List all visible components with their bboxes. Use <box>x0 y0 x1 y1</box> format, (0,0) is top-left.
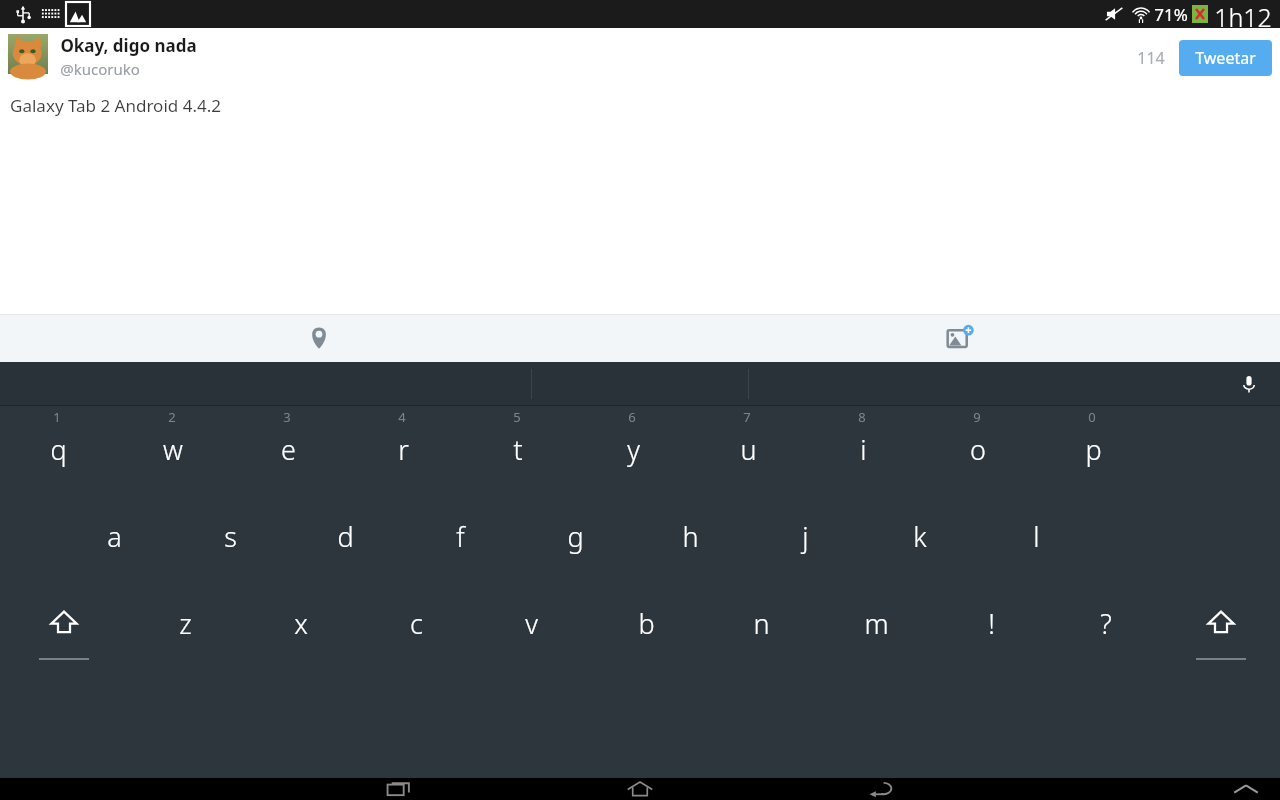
staticText: 4 <box>398 408 406 426</box>
button[interactable]: l <box>984 506 1088 566</box>
button[interactable]: Expand <box>1218 778 1274 800</box>
staticText: s <box>224 518 237 555</box>
button[interactable]: e <box>236 419 340 479</box>
staticText: @kucoruko <box>60 59 140 79</box>
button[interactable]: a <box>62 506 166 566</box>
staticText: ! <box>988 605 995 642</box>
button[interactable]: Shift <box>12 593 116 653</box>
staticText: Okay, digo nada <box>60 34 197 57</box>
staticText: i <box>860 431 867 468</box>
button[interactable]: x <box>249 593 353 653</box>
staticText: l <box>1033 518 1040 555</box>
staticText: e <box>281 431 296 468</box>
staticText: 7 <box>743 408 751 426</box>
staticText: n <box>753 605 770 642</box>
button[interactable]: w <box>121 419 225 479</box>
button[interactable]: g <box>523 506 627 566</box>
button[interactable]: p <box>1041 419 1145 479</box>
staticText: 114 <box>1137 47 1165 69</box>
staticText: q <box>50 431 67 468</box>
staticText: Galaxy Tab 2 Android 4.4.2 <box>10 94 221 117</box>
staticText: 3 <box>283 408 291 426</box>
staticText: t <box>513 431 523 468</box>
staticText: 9 <box>973 408 981 426</box>
staticText: o <box>970 431 986 468</box>
staticText: 2 <box>168 408 176 426</box>
button[interactable]: h <box>638 506 742 566</box>
staticText: k <box>913 518 927 555</box>
staticText: v <box>525 605 538 642</box>
button[interactable]: j <box>753 506 857 566</box>
staticText: 1h12 <box>1214 0 1272 28</box>
button[interactable]: s <box>178 506 282 566</box>
staticText: 0 <box>1088 408 1096 426</box>
staticText: ? <box>1100 605 1112 642</box>
staticText: 6 <box>628 408 636 426</box>
staticText: h <box>682 518 699 555</box>
staticText: 8 <box>858 408 866 426</box>
button[interactable]: q <box>6 419 110 479</box>
button[interactable]: ? <box>1054 593 1158 653</box>
staticText: b <box>638 605 655 642</box>
staticText: u <box>740 431 757 468</box>
button[interactable]: Shift <box>1169 593 1273 653</box>
button[interactable]: f <box>408 506 512 566</box>
staticText: d <box>337 518 354 555</box>
staticText: r <box>398 431 409 468</box>
button[interactable]: Recent apps <box>368 778 430 800</box>
staticText: y <box>627 431 640 468</box>
staticText: a <box>107 518 122 555</box>
staticText: j <box>802 518 809 555</box>
button[interactable]: m <box>824 593 928 653</box>
button[interactable]: t <box>466 419 570 479</box>
button[interactable]: k <box>868 506 972 566</box>
staticText: 5 <box>513 408 521 426</box>
button[interactable]: Add photo <box>936 314 984 362</box>
button[interactable]: y <box>581 419 685 479</box>
staticText: c <box>410 605 423 642</box>
button[interactable]: ! <box>939 593 1043 653</box>
button[interactable]: d <box>293 506 397 566</box>
staticText: f <box>456 518 465 555</box>
button[interactable]: v <box>479 593 583 653</box>
staticText: g <box>567 518 584 555</box>
button[interactable]: n <box>709 593 813 653</box>
button[interactable]: Voice input <box>1232 367 1266 401</box>
staticText: 71% <box>1154 3 1188 26</box>
staticText: w <box>163 431 183 468</box>
staticText: p <box>1085 431 1102 468</box>
staticText: Tweetar <box>1195 47 1256 69</box>
button[interactable]: Tweetar <box>1179 40 1272 76</box>
button[interactable]: u <box>696 419 800 479</box>
button[interactable]: Home <box>609 778 671 800</box>
button[interactable]: r <box>351 419 455 479</box>
staticText: x <box>294 605 308 642</box>
button[interactable]: Back <box>850 778 912 800</box>
button[interactable]: Add location <box>295 314 343 362</box>
staticText: z <box>179 605 192 642</box>
button[interactable]: o <box>926 419 1030 479</box>
staticText: 1 <box>53 408 61 426</box>
button[interactable]: c <box>364 593 468 653</box>
button[interactable]: b <box>594 593 698 653</box>
button[interactable]: z <box>133 593 237 653</box>
staticText: m <box>864 605 889 642</box>
button[interactable]: i <box>811 419 915 479</box>
